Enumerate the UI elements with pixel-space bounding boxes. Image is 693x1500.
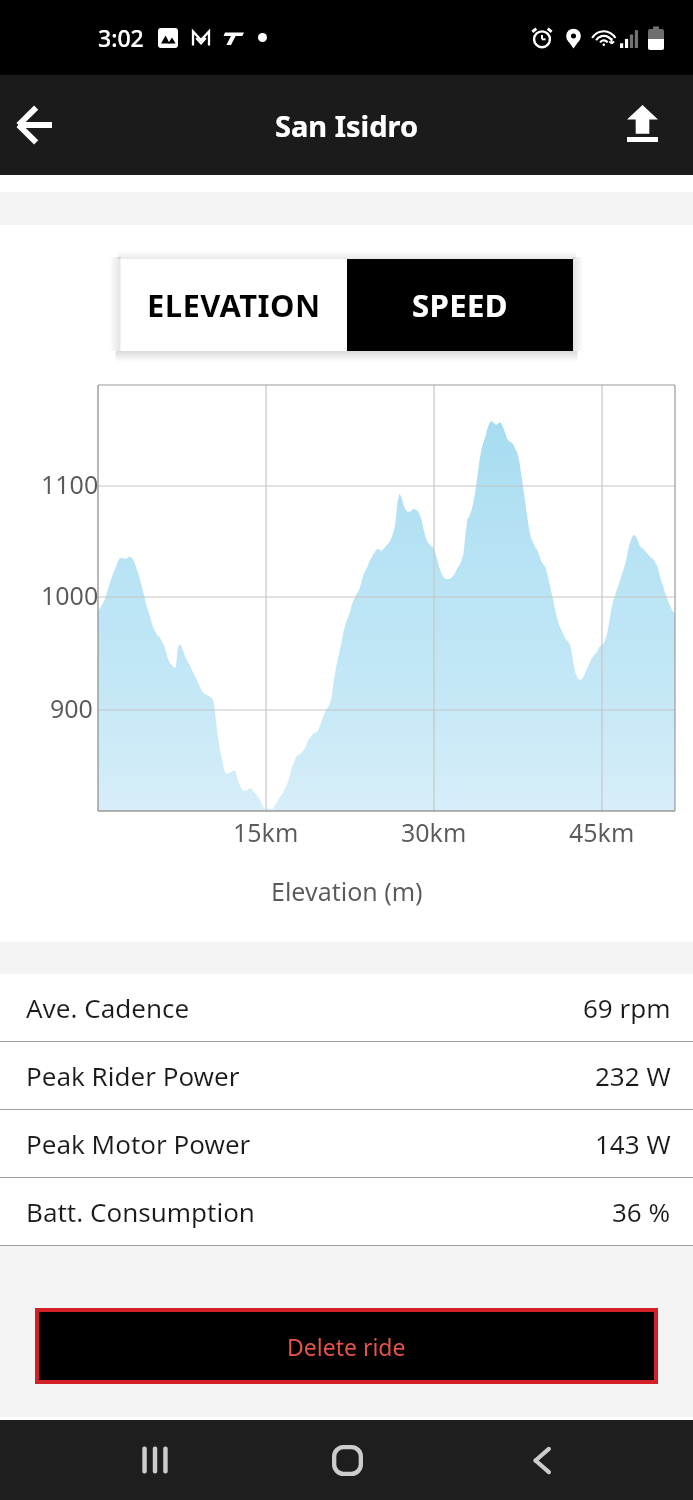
button[interactable]: Back	[512, 1430, 572, 1490]
button[interactable]: Home	[317, 1430, 377, 1490]
staticText: 232 W	[595, 1058, 671, 1093]
staticText: Peak Motor Power	[26, 1126, 251, 1161]
staticText: Ave. Cadence	[26, 990, 190, 1025]
staticText: 143 W	[595, 1126, 671, 1161]
staticText: 69 rpm	[583, 990, 671, 1025]
staticText: Delete ride	[287, 1331, 406, 1362]
staticText: 1000	[41, 578, 99, 612]
staticText: 30km	[401, 815, 467, 849]
button[interactable]: SPEED	[347, 259, 573, 351]
button[interactable]: Delete ride	[39, 1312, 654, 1380]
staticText: 900	[50, 691, 93, 725]
button[interactable]: Share	[616, 99, 668, 151]
button[interactable]: Peak Rider Power	[0, 1042, 693, 1109]
staticText: 3:02	[98, 22, 144, 53]
button[interactable]: Batt. Consumption	[0, 1178, 693, 1245]
staticText: 15km	[233, 815, 299, 849]
button[interactable]: Ave. Cadence	[0, 974, 693, 1041]
staticText: 1100	[41, 467, 99, 501]
staticText: Batt. Consumption	[26, 1194, 255, 1229]
button[interactable]: Recent apps	[125, 1430, 185, 1490]
staticText: Elevation (m)	[271, 874, 423, 908]
button[interactable]: ELEVATION	[121, 259, 347, 351]
button[interactable]: Peak Motor Power	[0, 1110, 693, 1177]
staticText: 45km	[569, 815, 635, 849]
staticText: SPEED	[412, 284, 508, 326]
staticText: Peak Rider Power	[26, 1058, 240, 1093]
staticText: San Isidro	[275, 106, 419, 145]
staticText: 36 %	[612, 1194, 671, 1229]
button[interactable]: Back	[8, 99, 60, 151]
staticText: ELEVATION	[147, 284, 321, 326]
